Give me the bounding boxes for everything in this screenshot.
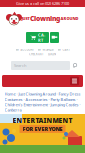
- button[interactable]: LOGIN: [48, 52, 56, 56]
- button[interactable]: MY WISHLIST: [37, 48, 53, 51]
- staticText: AROUND: [60, 16, 78, 21]
- staticText: MY CART: [57, 48, 69, 51]
- staticText: Home · Just Clowning Around · Fancy Dres…: [4, 91, 80, 113]
- staticText: LOGIN: [48, 52, 56, 56]
- button[interactable]: Give us a call on (02) 6286 7100: [0, 0, 85, 7]
- button[interactable]: CHECKOUT: [29, 52, 43, 56]
- button[interactable]: MY ACCOUNT: [15, 48, 33, 51]
- staticText: MY WISHLIST: [37, 48, 53, 51]
- staticText: JUST: [21, 16, 29, 21]
- button[interactable]: Just Clowning Around home: [0, 7, 85, 30]
- button[interactable]: Home · Just Clowning Around · Fancy Dres…: [1, 90, 83, 114]
- staticText: Clowning: [30, 14, 60, 23]
- button[interactable]: Search: [0, 59, 85, 72]
- button[interactable]: CART: [26, 32, 49, 43]
- staticText: CART: [38, 32, 45, 43]
- staticText: CHECKOUT: [29, 52, 43, 56]
- staticText: FOR EVERYONE: [22, 125, 62, 132]
- staticText: ENTERTAINMENT: [12, 116, 72, 125]
- button[interactable]: Menu: [70, 77, 79, 85]
- button[interactable]: MY CART: [57, 48, 69, 51]
- staticText: MY ACCOUNT: [15, 48, 33, 51]
- button[interactable]: Checkout: [50, 32, 59, 43]
- staticText: Search: [14, 63, 26, 68]
- staticText: Give us a call on (02) 6286 7100: [16, 1, 69, 6]
